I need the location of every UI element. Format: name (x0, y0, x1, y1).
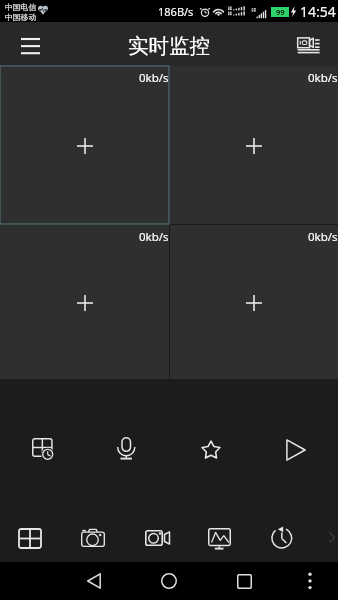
button[interactable]: Playback history (258, 514, 306, 562)
button[interactable]: Snapshot (69, 514, 117, 562)
staticText: 中国电信 (5, 2, 37, 12)
button[interactable]: Record video (133, 514, 181, 562)
staticText: 14:54 (300, 2, 336, 21)
button[interactable]: Back (75, 562, 113, 600)
button[interactable]: More tools (320, 525, 338, 549)
button[interactable]: Device list (280, 22, 338, 66)
button[interactable]: Playback (19, 424, 67, 472)
button[interactable]: Play (272, 426, 320, 474)
staticText: 0kb/s (139, 70, 169, 86)
button[interactable]: 0kb/s (170, 66, 338, 224)
button[interactable]: Microphone (102, 424, 150, 472)
staticText: 0kb/s (308, 229, 338, 245)
button[interactable]: Image quality (195, 514, 243, 562)
button[interactable]: Menu (0, 22, 61, 66)
staticText: 0kb/s (308, 70, 338, 86)
staticText: 99 (276, 7, 285, 17)
staticText: 186B/s (158, 4, 194, 19)
button[interactable]: Recents (225, 562, 263, 600)
button[interactable]: Favorite (187, 425, 235, 473)
button[interactable]: 0kb/s (0, 66, 169, 224)
button[interactable]: 0kb/s (0, 225, 169, 379)
staticText: 0kb/s (139, 229, 169, 245)
button[interactable]: More options (291, 562, 329, 600)
staticText: 实时监控 (128, 33, 210, 59)
button[interactable]: 0kb/s (170, 225, 338, 379)
staticText: 中国移动 (5, 12, 37, 22)
button[interactable]: Split screen (6, 514, 54, 562)
button[interactable]: Home (150, 562, 188, 600)
